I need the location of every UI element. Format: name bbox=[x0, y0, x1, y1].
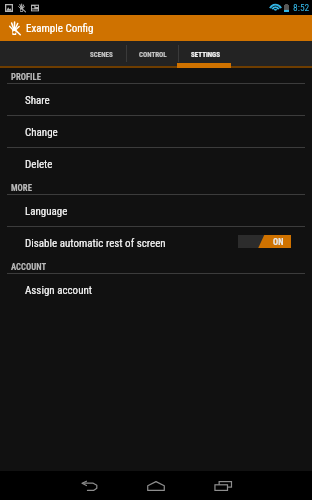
staticText: SETTINGS bbox=[191, 51, 220, 59]
staticText: ON bbox=[273, 237, 284, 247]
button[interactable]: Recent apps bbox=[200, 471, 246, 500]
staticText: CONTROL bbox=[139, 51, 167, 59]
button[interactable]: Share bbox=[0, 84, 312, 115]
staticText: Share bbox=[25, 94, 50, 107]
button[interactable]: Language bbox=[0, 195, 312, 226]
staticText: MORE bbox=[11, 183, 32, 193]
button[interactable]: CONTROL bbox=[127, 41, 179, 66]
staticText: Change bbox=[25, 126, 58, 139]
staticText: ACCOUNT bbox=[11, 262, 47, 272]
staticText: Assign account bbox=[25, 284, 93, 297]
button[interactable]: Assign account bbox=[0, 274, 312, 305]
staticText: Delete bbox=[25, 158, 53, 171]
staticText: SCENES bbox=[90, 51, 113, 59]
button[interactable]: Delete bbox=[0, 148, 312, 179]
button[interactable]: Home bbox=[133, 471, 179, 500]
staticText: PROFILE bbox=[11, 72, 41, 82]
button[interactable]: SETTINGS bbox=[179, 41, 231, 66]
staticText: 8:52 bbox=[293, 2, 310, 13]
button[interactable]: SCENES bbox=[76, 41, 127, 66]
staticText: Language bbox=[25, 205, 68, 218]
button[interactable]: Change bbox=[0, 116, 312, 147]
button[interactable]: Disable automatic rest of screen bbox=[0, 227, 312, 258]
staticText: Example Config bbox=[26, 22, 94, 35]
button[interactable]: Back bbox=[66, 471, 112, 500]
staticText: Disable automatic rest of screen bbox=[25, 237, 166, 250]
